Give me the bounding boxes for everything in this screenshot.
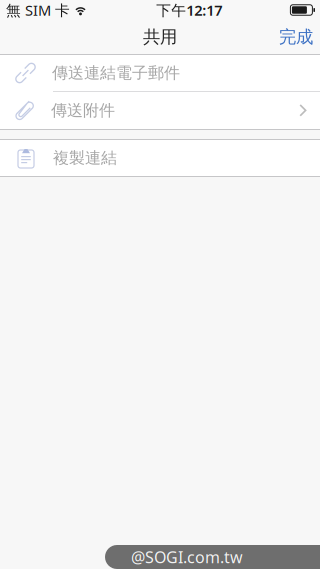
- button[interactable]: 傳送附件: [0, 92, 320, 129]
- staticText: @SOGI.com.tw: [131, 546, 243, 568]
- button[interactable]: 傳送連結電子郵件: [0, 55, 320, 91]
- staticText: 傳送連結電子郵件: [52, 63, 180, 83]
- staticText: 無 SIM 卡: [6, 0, 70, 20]
- staticText: 完成: [279, 26, 313, 48]
- staticText: 共用: [143, 26, 177, 48]
- staticText: 傳送附件: [51, 101, 115, 120]
- button[interactable]: 完成: [267, 20, 320, 53]
- staticText: 複製連結: [53, 148, 117, 168]
- button[interactable]: 複製連結: [0, 140, 320, 176]
- staticText: 下午12:17: [156, 0, 222, 20]
